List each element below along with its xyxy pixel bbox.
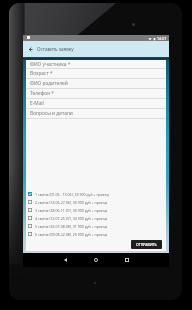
button[interactable]: 4 смена (12.07-25.07), 34 900 руб + прое…: [26, 214, 166, 222]
staticText: 14:37: [157, 36, 167, 41]
button[interactable]: Вопросы и детали: [26, 109, 166, 119]
button[interactable]: ФИО участника *: [26, 60, 166, 69]
button[interactable]: E-Mail: [26, 99, 166, 109]
staticText: 4 смена (12.07-25.07), 34 900 руб + прое…: [35, 216, 107, 221]
staticText: Оставить заявку: [37, 46, 74, 52]
button[interactable]: Обзор: [120, 253, 134, 267]
button[interactable]: Телефон *: [26, 89, 166, 99]
staticText: 6 смена (09.08-22.08), 29 900 руб + прое…: [35, 232, 107, 237]
button[interactable]: Назад: [58, 253, 72, 267]
button[interactable]: 1 смена (01.06 - 13.06), 33 900 руб + пр…: [26, 190, 166, 198]
staticText: Телефон *: [30, 90, 55, 97]
staticText: 2 смена (14.06-27.06), 30 900 руб + прое…: [35, 200, 107, 205]
staticText: E-Mail: [30, 100, 44, 107]
button[interactable]: ОТПРАВИТЬ: [131, 240, 162, 249]
button[interactable]: Возраст *: [26, 69, 166, 79]
staticText: ФИО родителей: [30, 80, 68, 87]
button[interactable]: Главный экран: [89, 253, 103, 267]
button[interactable]: 6 смена (09.08-22.08), 29 900 руб + прое…: [26, 230, 166, 238]
button[interactable]: 3 смена (28.06-11.07), 30 900 руб + прое…: [26, 206, 166, 214]
staticText: 3 смена (28.06-11.07), 30 900 руб + прое…: [35, 208, 107, 213]
staticText: 5 смена (26.07-08.08), 31 900 руб + прое…: [35, 224, 107, 229]
button[interactable]: ФИО родителей: [26, 79, 166, 89]
button[interactable]: 5 смена (26.07-08.08), 31 900 руб + прое…: [26, 222, 166, 230]
staticText: ФИО участника *: [30, 61, 71, 68]
staticText: Возраст *: [30, 70, 53, 77]
staticText: 1 смена (01.06 - 13.06), 33 900 руб + пр…: [35, 192, 109, 197]
staticText: ОТПРАВИТЬ: [136, 242, 157, 247]
button[interactable]: 2 смена (14.06-27.06), 30 900 руб + прое…: [26, 198, 166, 206]
button[interactable]: Назад: [23, 41, 37, 57]
staticText: Вопросы и детали: [30, 110, 73, 117]
